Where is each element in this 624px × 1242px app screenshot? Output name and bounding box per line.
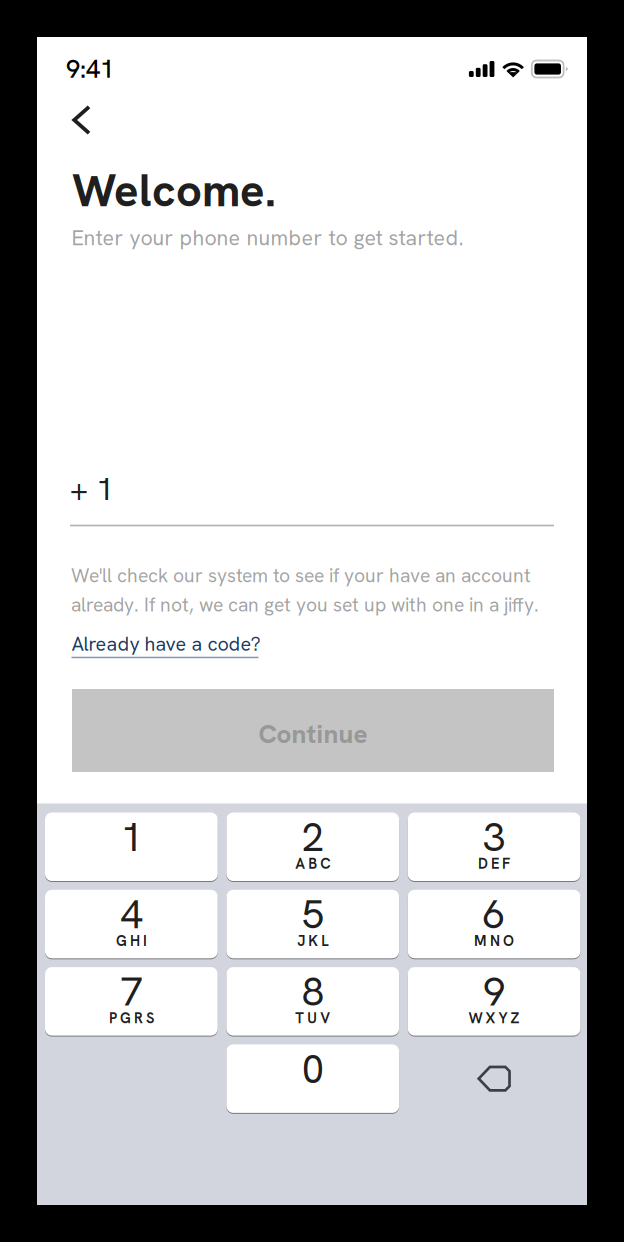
staticText: D E F: [478, 854, 510, 873]
staticText: 6: [483, 888, 505, 940]
button[interactable]: 3: [408, 812, 580, 881]
staticText: 4: [120, 888, 142, 940]
staticText: M N O: [474, 931, 514, 950]
button[interactable]: 9: [408, 967, 580, 1036]
staticText: P G R S: [109, 1009, 154, 1028]
button[interactable]: 0: [226, 1044, 399, 1113]
staticText: Enter your phone number to get started.: [71, 224, 463, 252]
staticText: 2: [302, 811, 324, 863]
staticText: 9: [483, 966, 505, 1018]
staticText: 8: [302, 966, 324, 1018]
button[interactable]: 7: [45, 967, 218, 1036]
button[interactable]: 6: [408, 890, 580, 958]
staticText: G H I: [116, 931, 147, 950]
staticText: Already have a code?: [71, 631, 260, 657]
staticText: 7: [120, 966, 142, 1018]
staticText: 0: [302, 1043, 324, 1095]
staticText: T U V: [295, 1009, 330, 1028]
staticText: Welcome.: [72, 161, 276, 220]
staticText: A B C: [295, 854, 330, 873]
staticText: already. If not, we can get you set up w…: [71, 592, 539, 617]
button[interactable]: Back: [68, 101, 95, 139]
staticText: We'll check our system to see if your ha…: [71, 563, 531, 588]
button[interactable]: 2: [226, 812, 399, 881]
staticText: Continue: [258, 717, 367, 751]
staticText: + 1: [70, 468, 114, 510]
button[interactable]: Delete: [408, 1044, 580, 1113]
button[interactable]: Continue: [72, 689, 554, 772]
button[interactable]: Already have a code?: [68, 628, 263, 661]
staticText: 5: [302, 888, 324, 940]
staticText: J K L: [297, 931, 328, 950]
staticText: 1: [120, 811, 142, 863]
staticText: 9:41: [66, 52, 114, 85]
button[interactable]: 4: [45, 890, 218, 958]
button[interactable]: 5: [226, 890, 399, 958]
staticText: W X Y Z: [469, 1009, 520, 1028]
button[interactable]: 1: [45, 812, 218, 881]
staticText: 3: [483, 811, 505, 863]
button[interactable]: 8: [226, 967, 399, 1036]
